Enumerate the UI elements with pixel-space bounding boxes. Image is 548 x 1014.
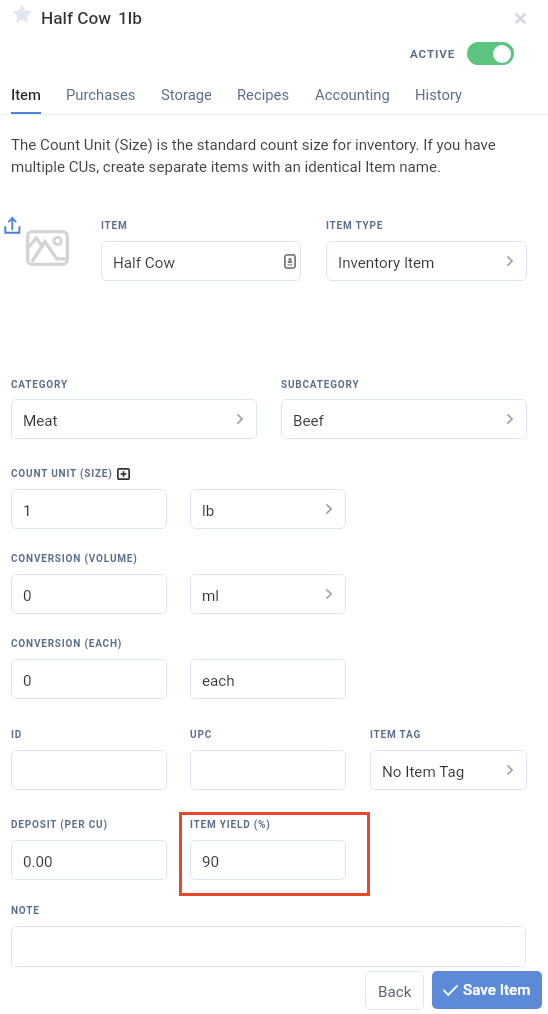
- staticText: Save Item: [463, 981, 531, 999]
- button[interactable]: 0: [11, 574, 167, 614]
- staticText: Recipes: [237, 86, 290, 103]
- button[interactable]: 90: [190, 840, 346, 880]
- staticText: Meat: [23, 412, 58, 430]
- staticText: CONVERSION (EACH): [11, 638, 123, 650]
- button[interactable]: ml: [190, 574, 346, 614]
- staticText: History: [415, 86, 463, 103]
- button[interactable]: Active toggle: [467, 42, 514, 65]
- button[interactable]: Meat: [11, 399, 257, 439]
- staticText: lb: [202, 502, 215, 520]
- staticText: No Item Tag: [382, 763, 465, 781]
- staticText: 90: [202, 853, 220, 871]
- staticText: DEPOSIT (PER CU): [11, 819, 108, 831]
- button[interactable]: Half Cow: [101, 241, 301, 281]
- button[interactable]: [190, 750, 346, 790]
- staticText: ml: [202, 587, 220, 605]
- button[interactable]: Item: [11, 86, 41, 103]
- staticText: 0.00: [23, 853, 53, 871]
- staticText: SUBCATEGORY: [281, 379, 360, 391]
- button[interactable]: 0: [11, 659, 167, 699]
- staticText: UPC: [190, 729, 212, 741]
- staticText: ACTIVE: [410, 47, 456, 61]
- staticText: ITEM TAG: [370, 729, 421, 741]
- button[interactable]: Add count unit: [117, 468, 130, 480]
- button[interactable]: Storage: [161, 86, 212, 103]
- staticText: ITEM: [101, 220, 128, 232]
- staticText: Accounting: [315, 86, 390, 103]
- button[interactable]: No Item Tag: [370, 750, 527, 790]
- staticText: Inventory Item: [338, 254, 435, 272]
- button[interactable]: Back: [365, 971, 424, 1010]
- staticText: Purchases: [66, 86, 136, 103]
- staticText: 1: [23, 502, 32, 520]
- staticText: Beef: [293, 412, 324, 430]
- staticText: Storage: [161, 86, 212, 103]
- button[interactable]: Close: [507, 5, 533, 31]
- staticText: 0: [23, 587, 32, 605]
- staticText: ITEM YIELD (%): [190, 819, 271, 831]
- button[interactable]: Inventory Item: [326, 241, 527, 281]
- button[interactable]: Favorite: [12, 4, 32, 24]
- button[interactable]: Beef: [281, 399, 527, 439]
- button[interactable]: 0.00: [11, 840, 167, 880]
- button[interactable]: Recipes: [237, 86, 290, 103]
- button[interactable]: 1: [11, 489, 167, 529]
- button[interactable]: [11, 926, 526, 967]
- staticText: 0: [23, 672, 32, 690]
- staticText: Half Cow: [113, 254, 175, 272]
- button[interactable]: Accounting: [315, 86, 390, 103]
- button[interactable]: Purchases: [66, 86, 136, 103]
- staticText: COUNT UNIT (SIZE): [11, 468, 113, 480]
- staticText: Half Cow: [41, 8, 112, 28]
- staticText: 1lb: [118, 8, 142, 28]
- staticText: Item: [11, 86, 41, 103]
- button[interactable]: History: [415, 86, 463, 103]
- staticText: CONVERSION (VOLUME): [11, 553, 138, 565]
- staticText: ID: [11, 729, 23, 741]
- staticText: Back: [378, 983, 412, 1001]
- button[interactable]: lb: [190, 489, 346, 529]
- staticText: ITEM TYPE: [326, 220, 384, 232]
- button[interactable]: [11, 750, 167, 790]
- button[interactable]: Save Item: [432, 971, 542, 1009]
- staticText: The Count Unit (Size) is the standard co…: [11, 136, 511, 176]
- staticText: NOTE: [11, 905, 40, 917]
- button[interactable]: Upload image: [4, 217, 21, 234]
- staticText: each: [202, 672, 235, 690]
- staticText: CATEGORY: [11, 379, 68, 391]
- button[interactable]: each: [190, 659, 346, 699]
